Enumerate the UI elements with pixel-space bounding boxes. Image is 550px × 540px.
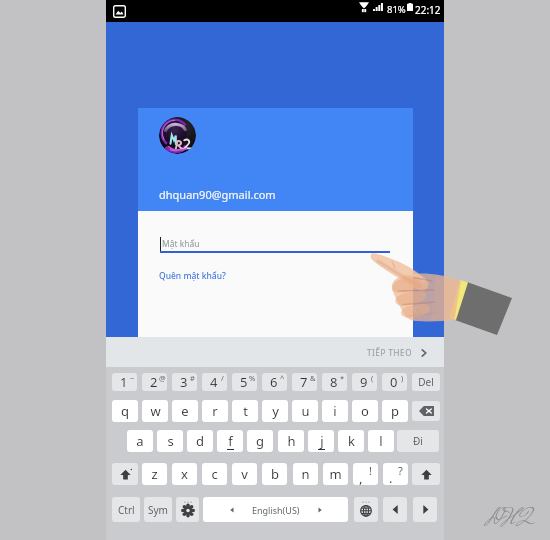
button[interactable]: a <box>127 430 153 452</box>
button[interactable]: 0 <box>382 373 407 391</box>
button[interactable]: k <box>338 430 364 452</box>
staticText: s <box>167 432 174 450</box>
staticText: . <box>389 469 393 485</box>
button[interactable]: English(US) <box>203 497 348 522</box>
button[interactable]: l <box>368 430 394 452</box>
staticText: q <box>121 402 129 420</box>
button[interactable]: Del <box>412 373 440 391</box>
button[interactable]: e <box>172 400 198 422</box>
button[interactable]: j <box>308 430 334 452</box>
button[interactable]: n <box>293 463 318 485</box>
staticText: h <box>287 432 296 450</box>
button[interactable]: s <box>157 430 183 452</box>
button[interactable]: 5 <box>232 373 257 391</box>
staticText: w <box>150 402 161 420</box>
staticText: Del <box>418 375 434 389</box>
button[interactable]: 4 <box>202 373 227 391</box>
staticText: b <box>271 465 279 483</box>
button[interactable]: h <box>278 430 304 452</box>
button[interactable]: Change language <box>354 497 378 522</box>
button[interactable]: o <box>352 400 378 422</box>
button[interactable]: Move cursor left <box>383 497 407 522</box>
button[interactable]: q <box>112 400 138 422</box>
staticText: Ctrl <box>118 503 135 517</box>
button[interactable]: TIẾP THEO <box>367 347 428 358</box>
staticText: 5 <box>240 373 248 391</box>
button[interactable]: w <box>142 400 168 422</box>
button[interactable]: d <box>187 430 213 452</box>
staticText: n <box>301 465 310 483</box>
staticText: a <box>136 432 144 450</box>
button[interactable]: g <box>247 430 273 452</box>
staticText: 0 <box>390 373 398 391</box>
staticText: / <box>221 373 224 383</box>
staticText: o <box>361 402 369 420</box>
button[interactable]: Đi <box>397 430 439 452</box>
staticText: % <box>249 373 256 383</box>
button[interactable]: m <box>323 463 348 485</box>
button[interactable]: Sym <box>144 497 172 522</box>
button[interactable]: , <box>353 463 378 485</box>
button[interactable]: z <box>142 463 167 485</box>
staticText: , <box>359 469 363 485</box>
button[interactable]: v <box>232 463 257 485</box>
staticText: 7 <box>300 373 308 391</box>
button[interactable]: i <box>322 400 348 422</box>
button[interactable]: Shift <box>112 463 138 485</box>
staticText: # <box>190 373 195 383</box>
staticText: l <box>379 432 383 450</box>
staticText: c <box>211 465 218 483</box>
button[interactable]: 7 <box>292 373 317 391</box>
staticText: x <box>181 465 188 483</box>
button[interactable]: 9 <box>352 373 377 391</box>
staticText: ! <box>369 463 372 478</box>
button[interactable]: Keyboard settings <box>176 497 199 522</box>
staticText: t <box>243 402 248 420</box>
staticText: k <box>348 432 355 450</box>
staticText: DHQ <box>484 504 535 538</box>
staticText: 4 <box>210 373 218 391</box>
staticText: y <box>272 402 279 420</box>
button[interactable]: u <box>292 400 318 422</box>
button[interactable]: Backspace <box>412 401 440 421</box>
button[interactable]: b <box>262 463 287 485</box>
staticText: ) <box>401 373 404 383</box>
button[interactable]: c <box>202 463 227 485</box>
button[interactable]: y <box>262 400 288 422</box>
staticText: v <box>241 465 248 483</box>
staticText: 9 <box>360 373 368 391</box>
staticText: Sym <box>148 503 168 517</box>
staticText: d <box>196 432 204 450</box>
button[interactable]: 8 <box>322 373 347 391</box>
staticText: * <box>340 373 345 383</box>
staticText: 1 <box>120 373 128 391</box>
button[interactable]: t <box>232 400 258 422</box>
button[interactable]: 3 <box>172 373 197 391</box>
button[interactable]: Shift <box>412 463 440 485</box>
button[interactable]: Move cursor right <box>413 497 437 522</box>
button[interactable]: Ctrl <box>112 497 140 522</box>
staticText: ( <box>371 373 374 383</box>
staticText: 8 <box>330 373 338 391</box>
button[interactable]: f <box>217 430 243 452</box>
button[interactable]: Quên mật khẩu? <box>159 270 226 282</box>
staticText: ? <box>398 463 403 478</box>
staticText: Mật khẩu <box>162 238 200 250</box>
staticText: @ <box>159 373 166 383</box>
staticText: e <box>181 402 189 420</box>
staticText: dhquan90@gmail.com <box>159 187 276 202</box>
staticText: m <box>329 465 342 483</box>
staticText: g <box>256 432 264 450</box>
button[interactable]: x <box>172 463 197 485</box>
staticText: ~ <box>130 373 135 383</box>
button[interactable]: p <box>382 400 408 422</box>
button[interactable]: 1 <box>112 373 137 391</box>
button[interactable]: r <box>202 400 228 422</box>
button[interactable]: 2 <box>142 373 167 391</box>
staticText: i <box>333 402 337 420</box>
button[interactable]: . <box>383 463 408 485</box>
staticText: English(US) <box>252 504 300 516</box>
staticText: u <box>301 402 310 420</box>
staticText: 3 <box>180 373 188 391</box>
button[interactable]: 6 <box>262 373 287 391</box>
